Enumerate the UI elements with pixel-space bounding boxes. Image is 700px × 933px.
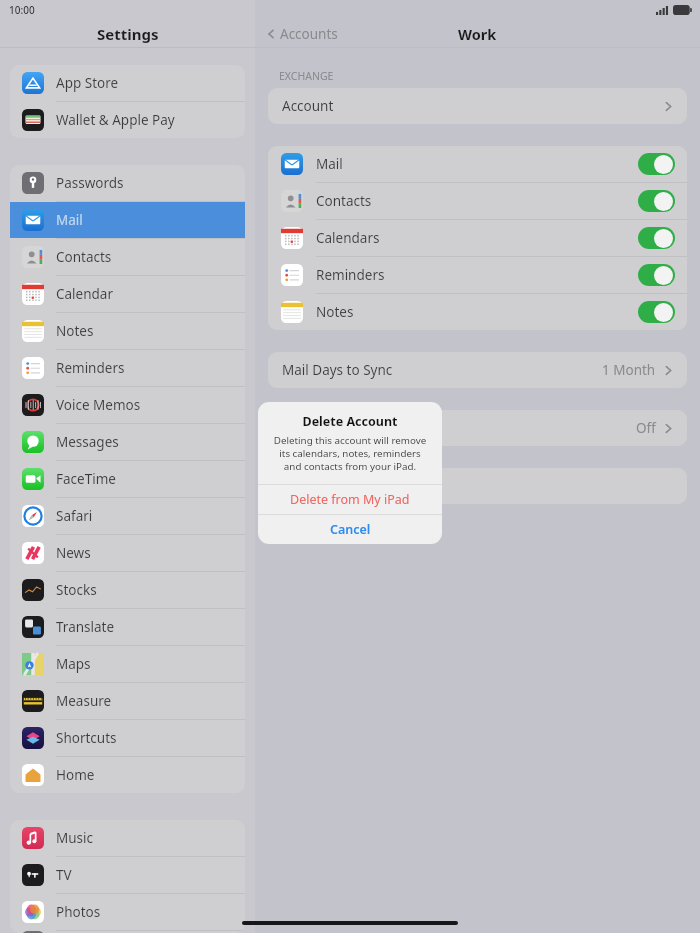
staticText: Delete Account: [271, 413, 429, 430]
staticText: Maps: [56, 655, 91, 673]
button[interactable]: Accounts: [255, 22, 346, 46]
button[interactable]: Contacts: [10, 239, 245, 275]
button[interactable]: Measure: [10, 683, 245, 719]
staticText: Settings: [97, 24, 159, 44]
button[interactable]: Calendars: [268, 220, 687, 256]
button[interactable]: Voice Memos: [10, 387, 245, 423]
button[interactable]: Camera: [10, 931, 245, 933]
button[interactable]: [638, 153, 675, 175]
staticText: Music: [56, 829, 94, 847]
button[interactable]: App Store: [10, 65, 245, 101]
staticText: Shortcuts: [56, 729, 117, 747]
button[interactable]: TV: [10, 857, 245, 893]
button[interactable]: Shortcuts: [10, 720, 245, 756]
button[interactable]: Messages: [10, 424, 245, 460]
staticText: Messages: [56, 433, 119, 451]
button[interactable]: Music: [10, 820, 245, 856]
staticText: Stocks: [56, 581, 97, 599]
staticText: Deleting this account will remove its ca…: [271, 434, 429, 473]
button[interactable]: Contacts: [268, 183, 687, 219]
staticText: Account: [282, 97, 334, 115]
staticText: Delete Account: [282, 477, 378, 495]
staticText: News: [56, 544, 91, 562]
button[interactable]: Delete Account: [268, 468, 687, 504]
staticText: FaceTime: [56, 470, 116, 488]
staticText: Off: [636, 419, 656, 437]
button[interactable]: Reminders: [10, 350, 245, 386]
staticText: Safari: [56, 507, 93, 525]
staticText: TV: [56, 866, 72, 884]
staticText: Voice Memos: [56, 396, 141, 414]
button[interactable]: Maps: [10, 646, 245, 682]
button[interactable]: Account: [268, 88, 687, 124]
button[interactable]: Photos: [10, 894, 245, 930]
staticText: Photos: [56, 903, 101, 921]
button[interactable]: Mail: [268, 146, 687, 182]
button[interactable]: [638, 301, 675, 323]
staticText: Reminders: [316, 266, 385, 284]
button[interactable]: Stocks: [10, 572, 245, 608]
staticText: App Store: [56, 74, 119, 92]
button[interactable]: Home: [10, 757, 245, 793]
staticText: Measure: [56, 692, 112, 710]
staticText: Contacts: [316, 192, 372, 210]
staticText: Translate: [56, 618, 115, 636]
button[interactable]: Translate: [10, 609, 245, 645]
staticText: Automatic Reply: [282, 419, 386, 437]
button[interactable]: FaceTime: [10, 461, 245, 497]
staticText: EXCHANGE: [279, 69, 334, 83]
button[interactable]: Passwords: [10, 165, 245, 201]
staticText: 1 Month: [602, 361, 656, 379]
staticText: Reminders: [56, 359, 125, 377]
button[interactable]: [638, 264, 675, 286]
staticText: Mail: [56, 211, 83, 229]
button[interactable]: Wallet & Apple Pay: [10, 102, 245, 138]
button[interactable]: Automatic Reply: [268, 410, 687, 446]
staticText: Delete from My iPad: [290, 491, 410, 508]
button[interactable]: News: [10, 535, 245, 571]
staticText: Mail Days to Sync: [282, 361, 393, 379]
staticText: Cancel: [330, 521, 371, 538]
button[interactable]: Mail Days to Sync: [268, 352, 687, 388]
staticText: Notes: [316, 303, 354, 321]
button[interactable]: [638, 190, 675, 212]
staticText: Wallet & Apple Pay: [56, 111, 175, 129]
button[interactable]: Delete from My iPad: [258, 485, 442, 514]
button[interactable]: Calendar: [10, 276, 245, 312]
staticText: Calendars: [316, 229, 380, 247]
staticText: Calendar: [56, 285, 113, 303]
staticText: Passwords: [56, 174, 124, 192]
button[interactable]: Reminders: [268, 257, 687, 293]
button[interactable]: Cancel: [258, 515, 442, 544]
button[interactable]: Safari: [10, 498, 245, 534]
staticText: Work: [458, 24, 497, 44]
staticText: 10:00: [9, 3, 35, 17]
button[interactable]: Notes: [268, 294, 687, 330]
staticText: Contacts: [56, 248, 112, 266]
button[interactable]: Mail: [10, 202, 245, 238]
button[interactable]: [638, 227, 675, 249]
staticText: Notes: [56, 322, 94, 340]
button[interactable]: Notes: [10, 313, 245, 349]
staticText: Home: [56, 766, 95, 784]
staticText: Mail: [316, 155, 343, 173]
staticText: Accounts: [280, 25, 338, 43]
